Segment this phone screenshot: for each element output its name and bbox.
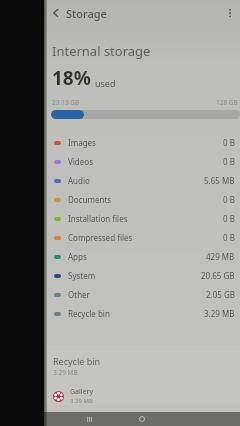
button[interactable]: Documents bbox=[44, 190, 240, 209]
staticText: 0 B bbox=[223, 194, 235, 205]
staticText: Recycle bin bbox=[68, 308, 110, 319]
staticText: System bbox=[68, 270, 96, 281]
staticText: 3.29 MB bbox=[53, 368, 78, 377]
staticText: Documents bbox=[68, 194, 112, 205]
staticText: 20.65 GB bbox=[201, 270, 235, 281]
button[interactable]: Other bbox=[44, 285, 240, 304]
staticText: Storage bbox=[66, 6, 107, 21]
button[interactable]: Installation files bbox=[44, 209, 240, 228]
button[interactable]: Images bbox=[44, 133, 240, 152]
button[interactable]: Audio bbox=[44, 171, 240, 190]
button[interactable]: Gallery bbox=[44, 387, 240, 405]
staticText: Apps bbox=[68, 251, 87, 262]
staticText: 23.13 GB bbox=[52, 98, 80, 107]
staticText: 3.29 MB bbox=[70, 397, 93, 405]
button[interactable]: System bbox=[44, 266, 240, 285]
staticText: Other bbox=[68, 289, 90, 300]
button[interactable]: Home bbox=[134, 412, 150, 426]
button[interactable]: Apps bbox=[44, 247, 240, 266]
staticText: 429 MB bbox=[206, 251, 235, 262]
staticText: used bbox=[95, 77, 116, 89]
staticText: 3.29 MB bbox=[204, 308, 235, 319]
staticText: Internal storage bbox=[52, 42, 151, 60]
button[interactable]: More options bbox=[220, 3, 240, 23]
staticText: Compressed files bbox=[68, 232, 133, 243]
staticText: Audio bbox=[68, 175, 90, 186]
staticText: Images bbox=[68, 137, 96, 148]
staticText: Gallery bbox=[70, 387, 94, 397]
button[interactable]: Back bbox=[46, 3, 66, 23]
button[interactable]: Recent apps bbox=[81, 412, 97, 426]
staticText: Videos bbox=[68, 156, 93, 167]
button[interactable]: Videos bbox=[44, 152, 240, 171]
staticText: 0 B bbox=[223, 137, 235, 148]
staticText: 0 B bbox=[223, 156, 235, 167]
staticText: 5.65 MB bbox=[204, 175, 235, 186]
button[interactable]: Compressed files bbox=[44, 228, 240, 247]
staticText: 0 B bbox=[223, 213, 235, 224]
staticText: 0 B bbox=[223, 232, 235, 243]
staticText: 128 GB bbox=[216, 98, 238, 107]
button[interactable]: Recycle bin bbox=[44, 304, 240, 323]
staticText: 18% bbox=[52, 65, 91, 91]
staticText: Recycle bin bbox=[53, 355, 101, 367]
staticText: Installation files bbox=[68, 213, 128, 224]
staticText: 2.05 GB bbox=[206, 289, 235, 300]
